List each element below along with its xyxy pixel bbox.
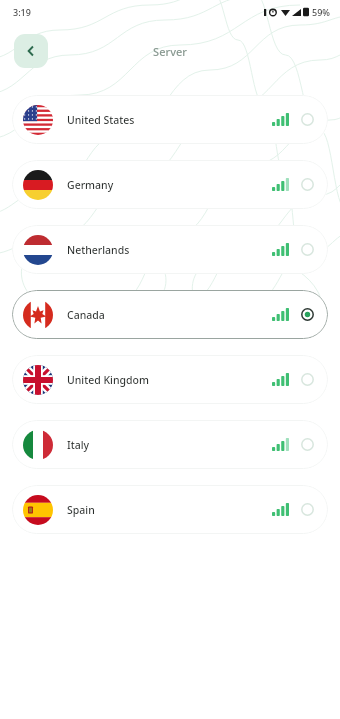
button[interactable]: United States <box>12 95 328 144</box>
button[interactable]: Germany <box>12 160 328 209</box>
button[interactable]: Canada <box>12 290 328 339</box>
button[interactable]: Spain <box>12 485 328 534</box>
staticText: Netherlands <box>67 243 130 257</box>
button[interactable]: Netherlands <box>12 225 328 274</box>
staticText: United Kingdom <box>67 373 149 387</box>
staticText: Italy <box>67 438 90 452</box>
staticText: Germany <box>67 178 114 192</box>
button[interactable]: United Kingdom <box>12 355 328 404</box>
staticText: 3:19 <box>13 6 31 18</box>
staticText: Server <box>153 44 187 59</box>
staticText: Spain <box>67 503 95 517</box>
staticText: 59% <box>312 6 330 18</box>
staticText: United States <box>67 113 135 127</box>
button[interactable]: Italy <box>12 420 328 469</box>
staticText: Canada <box>67 308 105 322</box>
button[interactable]: Back <box>14 34 48 68</box>
